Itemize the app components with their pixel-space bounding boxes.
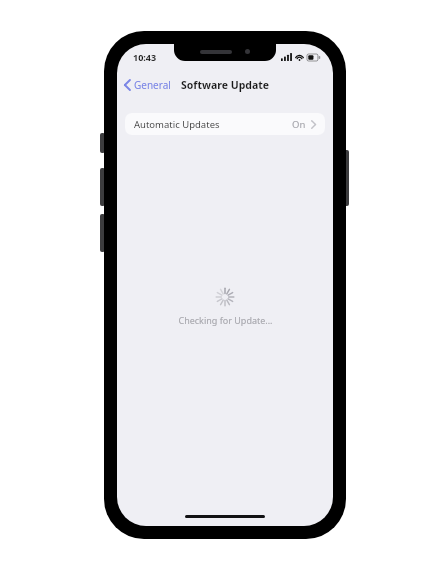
staticText: Automatic Updates	[134, 118, 220, 131]
button[interactable]: Automatic Updates	[125, 113, 325, 135]
staticText: Checking for Update...	[178, 314, 273, 326]
button[interactable]: Back to General	[117, 74, 177, 96]
staticText: On	[292, 118, 306, 131]
staticText: 10:43	[133, 51, 157, 63]
staticText: General	[134, 78, 171, 92]
staticText: Software Update	[181, 78, 270, 92]
